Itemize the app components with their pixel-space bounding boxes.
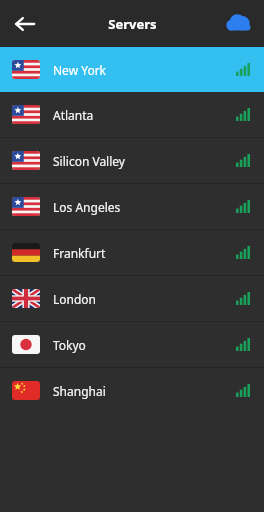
staticText: London: [53, 291, 97, 307]
button[interactable]: Silicon Valley: [0, 138, 264, 183]
button[interactable]: Los Angeles: [0, 184, 264, 229]
staticText: New York: [53, 62, 107, 78]
button[interactable]: Atlanta: [0, 92, 264, 137]
button[interactable]: Back: [8, 7, 42, 41]
button[interactable]: Frankfurt: [0, 230, 264, 275]
button[interactable]: London: [0, 276, 264, 321]
staticText: Silicon Valley: [53, 153, 125, 169]
staticText: Shanghai: [53, 383, 106, 399]
staticText: Servers: [108, 15, 157, 33]
button[interactable]: Shanghai: [0, 368, 264, 413]
staticText: Atlanta: [53, 107, 94, 123]
staticText: Tokyo: [53, 337, 86, 353]
button[interactable]: Cloud: [222, 7, 256, 41]
staticText: Frankfurt: [53, 245, 106, 261]
button[interactable]: Tokyo: [0, 322, 264, 367]
staticText: Los Angeles: [53, 199, 121, 215]
button[interactable]: New York: [0, 47, 264, 92]
